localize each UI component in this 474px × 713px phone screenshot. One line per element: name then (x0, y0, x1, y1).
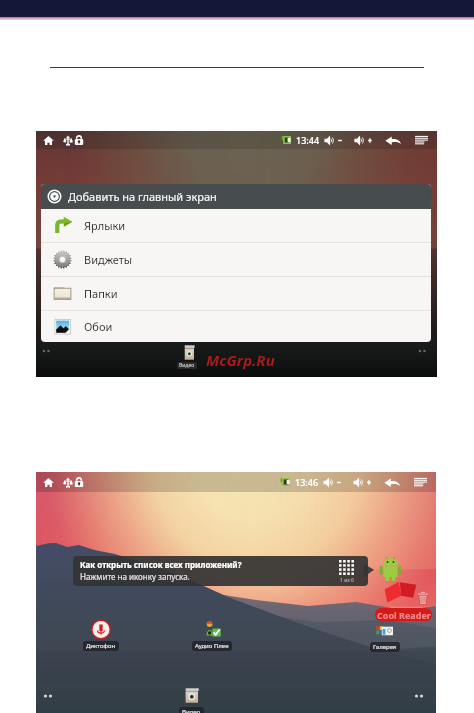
staticText: Диктофон (86, 642, 116, 650)
button[interactable]: Видео (179, 686, 204, 713)
staticText: 13:44 (296, 134, 320, 146)
staticText: Папки (84, 286, 118, 301)
staticText: McGrp.Ru (206, 350, 275, 370)
button[interactable]: Обои (41, 311, 431, 342)
staticText: Аудио Плее (195, 642, 229, 650)
other: Menu (415, 135, 428, 145)
other: Volume up (353, 477, 372, 488)
other: Volume up (354, 135, 373, 146)
button[interactable]: Как открыть список всех приложений? (73, 556, 368, 586)
staticText: Ярлыки (84, 218, 126, 233)
other: Home (43, 135, 54, 146)
staticText: Галерея (373, 643, 397, 651)
button[interactable]: Аудио Плее (192, 620, 232, 651)
button[interactable]: Ярлыки (41, 209, 431, 242)
staticText: Cool Reader (377, 609, 431, 621)
button[interactable]: Диктофон (83, 620, 119, 651)
staticText: Виджеты (84, 252, 133, 267)
staticText: Обои (84, 319, 113, 334)
staticText: 1 из 6 (340, 577, 354, 584)
staticText: Видео (182, 708, 201, 713)
staticText: 13:46 (295, 476, 319, 488)
button[interactable]: Виджеты (41, 243, 431, 276)
staticText: Видео (179, 362, 195, 369)
other: Menu (414, 477, 427, 487)
staticText: Нажмите на иконку запуска. (80, 571, 190, 582)
button[interactable]: Галерея (370, 621, 400, 652)
staticText: Как открыть список всех приложений? (80, 559, 242, 570)
other: Volume down (323, 477, 342, 488)
button[interactable]: Папки (41, 277, 431, 310)
other: Home (43, 477, 54, 488)
staticText: Добавить на главный экран (68, 189, 217, 204)
other: Back (385, 135, 401, 146)
other: Volume down (324, 135, 343, 146)
button[interactable]: Добавить на главный экран (41, 184, 431, 209)
other: Back (384, 477, 400, 488)
